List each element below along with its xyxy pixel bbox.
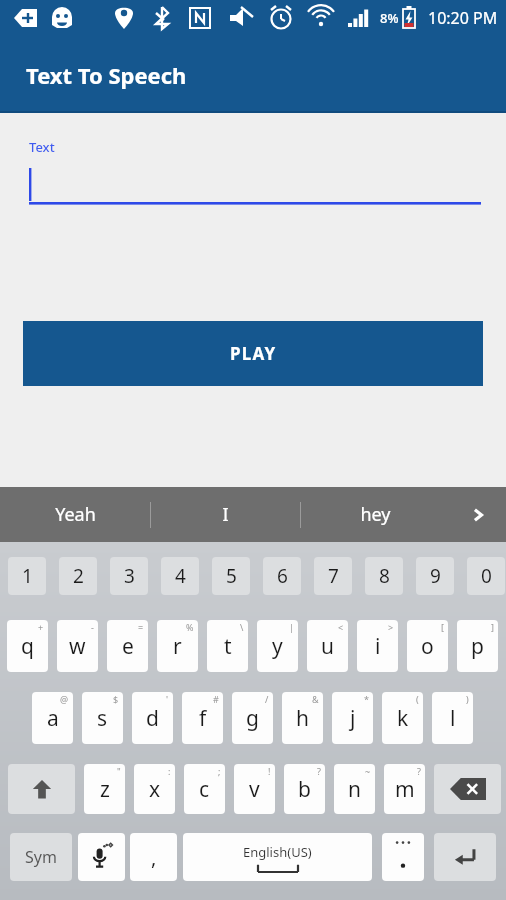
button[interactable]: Sym	[10, 833, 72, 881]
staticText: 6	[277, 563, 288, 589]
staticText: r	[173, 632, 182, 661]
button[interactable]: 8	[365, 557, 403, 595]
button[interactable]: y	[257, 620, 298, 672]
button[interactable]: PLAY	[23, 321, 483, 386]
button[interactable]: More suggestions	[450, 487, 506, 542]
button[interactable]: 3	[110, 557, 148, 595]
button[interactable]: p	[457, 620, 498, 672]
button[interactable]: i	[357, 620, 398, 672]
staticText: ;	[218, 765, 221, 777]
staticText: m	[395, 775, 415, 804]
staticText: %	[186, 621, 194, 633]
staticText: w	[69, 632, 86, 661]
staticText: English(US)	[243, 843, 312, 861]
button[interactable]: n	[334, 764, 375, 814]
staticText: n	[348, 775, 361, 804]
button[interactable]: b	[284, 764, 325, 814]
staticText: u	[321, 632, 334, 661]
staticText: !	[268, 765, 271, 777]
button[interactable]: o	[407, 620, 448, 672]
staticText: @	[60, 693, 69, 705]
button[interactable]: c	[184, 764, 225, 814]
staticText: e	[122, 632, 134, 661]
staticText: o	[421, 632, 434, 661]
staticText: 8	[379, 563, 390, 589]
staticText: )	[466, 693, 469, 705]
staticText: v	[249, 775, 260, 804]
button[interactable]: w	[57, 620, 98, 672]
button[interactable]: r	[157, 620, 198, 672]
button[interactable]: 7	[314, 557, 352, 595]
button[interactable]: l	[432, 692, 473, 744]
staticText: :	[168, 765, 171, 777]
staticText: j	[350, 704, 356, 733]
button[interactable]: Voice input	[78, 833, 125, 881]
button[interactable]: s	[82, 692, 123, 744]
staticText: 5	[226, 563, 237, 589]
staticText: =	[138, 621, 144, 633]
button[interactable]: Shift	[8, 764, 75, 814]
button[interactable]: v	[234, 764, 275, 814]
staticText: +	[38, 621, 44, 633]
button[interactable]: q	[7, 620, 48, 672]
button[interactable]: e	[107, 620, 148, 672]
button[interactable]: Yeah	[0, 487, 150, 542]
button[interactable]: h	[282, 692, 323, 744]
button[interactable]: English(US)	[183, 833, 372, 881]
button[interactable]	[382, 833, 424, 881]
button[interactable]: k	[382, 692, 423, 744]
staticText: 4	[175, 563, 186, 589]
button[interactable]: a	[32, 692, 73, 744]
staticText: /	[265, 693, 269, 705]
staticText: t	[224, 632, 232, 661]
button[interactable]: j	[332, 692, 373, 744]
button[interactable]: u	[307, 620, 348, 672]
staticText: i	[375, 632, 381, 661]
button[interactable]: Backspace	[434, 764, 501, 814]
staticText: #	[213, 693, 219, 705]
staticText: Yeah	[55, 502, 96, 527]
button[interactable]: 6	[263, 557, 301, 595]
staticText: b	[298, 775, 311, 804]
staticText: \	[240, 621, 244, 633]
staticText: a	[47, 704, 59, 733]
staticText: Text	[29, 138, 55, 156]
button[interactable]: I	[151, 487, 300, 542]
staticText: ]	[491, 621, 494, 633]
staticText: x	[149, 775, 161, 804]
button[interactable]: 1	[8, 557, 46, 595]
button[interactable]: Enter	[434, 833, 496, 881]
button[interactable]: 5	[212, 557, 250, 595]
staticText: l	[450, 704, 456, 733]
staticText: k	[397, 704, 409, 733]
staticText: [	[441, 621, 444, 633]
staticText: '	[166, 693, 169, 705]
button[interactable]: 9	[416, 557, 454, 595]
button[interactable]: 0	[467, 557, 505, 595]
button[interactable]: ,	[130, 833, 177, 881]
staticText: *	[364, 693, 369, 705]
staticText: 7	[328, 563, 339, 589]
staticText: $	[113, 693, 119, 705]
staticText: 3	[124, 563, 135, 589]
staticText: 9	[430, 563, 441, 589]
button[interactable]: d	[132, 692, 173, 744]
staticText: ,	[151, 844, 157, 871]
staticText: z	[100, 775, 110, 804]
staticText: >	[388, 621, 394, 633]
button[interactable]: x	[134, 764, 175, 814]
staticText: h	[296, 704, 309, 733]
button[interactable]: m	[384, 764, 425, 814]
button[interactable]: f	[182, 692, 223, 744]
staticText: ?	[317, 765, 321, 777]
button[interactable]: g	[232, 692, 273, 744]
staticText: (	[416, 693, 419, 705]
button[interactable]: t	[207, 620, 248, 672]
staticText: p	[471, 632, 484, 661]
staticText: q	[21, 632, 34, 661]
button[interactable]: z	[84, 764, 125, 814]
button[interactable]: 2	[59, 557, 97, 595]
button[interactable]: 4	[161, 557, 199, 595]
button[interactable]: hey	[301, 487, 450, 542]
staticText: Text To Speech	[26, 60, 187, 90]
